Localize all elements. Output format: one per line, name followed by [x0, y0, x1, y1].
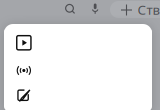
- button[interactable]: Go live: [4, 57, 152, 83]
- button[interactable]: Search: [58, 0, 82, 21]
- button[interactable]: Voice search: [83, 0, 107, 20]
- button[interactable]: Create a post: [4, 83, 152, 109]
- staticText: Створити: [137, 1, 160, 18]
- button[interactable]: Створити: [110, 1, 160, 18]
- button[interactable]: Upload a video: [4, 30, 152, 56]
